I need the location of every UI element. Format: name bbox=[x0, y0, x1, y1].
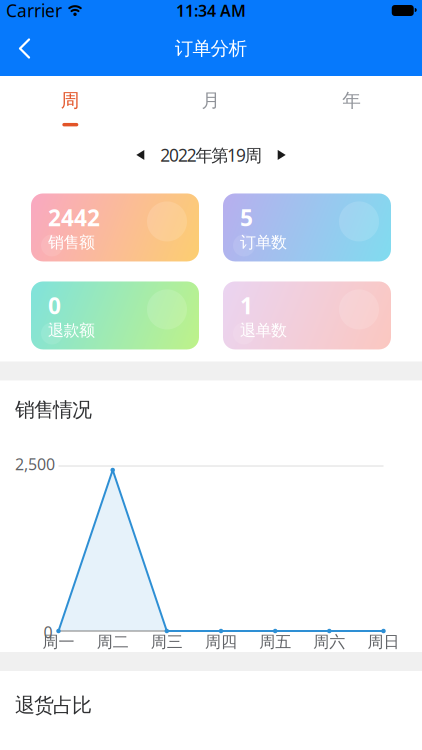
staticText: 退单数 bbox=[240, 320, 287, 340]
staticText: 周 bbox=[61, 89, 80, 112]
staticText: 周六 bbox=[313, 632, 345, 652]
staticText: 0 bbox=[48, 290, 61, 320]
staticText: 销售额 bbox=[48, 232, 95, 252]
staticText: 周四 bbox=[205, 632, 237, 652]
staticText: 0 bbox=[43, 621, 52, 643]
button[interactable]: 上一周 bbox=[130, 144, 150, 166]
staticText: 2,500 bbox=[15, 453, 55, 475]
staticText: 周日 bbox=[367, 632, 399, 652]
staticText: 2442 bbox=[48, 202, 100, 232]
staticText: 月 bbox=[201, 89, 220, 112]
staticText: 销售情况 bbox=[15, 397, 92, 422]
staticText: Carrier bbox=[6, 0, 62, 22]
staticText: 退款额 bbox=[48, 320, 95, 340]
staticText: 订单分析 bbox=[174, 37, 247, 60]
staticText: 周三 bbox=[151, 632, 183, 652]
staticText: 订单数 bbox=[240, 232, 287, 252]
staticText: 11:34 AM bbox=[176, 0, 246, 21]
staticText: 周一 bbox=[42, 632, 74, 652]
staticText: 1 bbox=[240, 290, 253, 320]
button[interactable]: 年 bbox=[281, 89, 422, 126]
staticText: 年 bbox=[342, 89, 361, 112]
staticText: 周五 bbox=[259, 632, 291, 652]
button[interactable]: Back bbox=[0, 24, 31, 72]
button[interactable]: 周 bbox=[0, 89, 141, 126]
button[interactable]: 下一周 bbox=[272, 144, 292, 166]
button[interactable]: 月 bbox=[141, 89, 281, 126]
staticText: 周二 bbox=[97, 632, 129, 652]
staticText: 2022年第19周 bbox=[160, 143, 262, 166]
staticText: 5 bbox=[240, 202, 253, 232]
staticText: 退货占比 bbox=[15, 693, 92, 718]
